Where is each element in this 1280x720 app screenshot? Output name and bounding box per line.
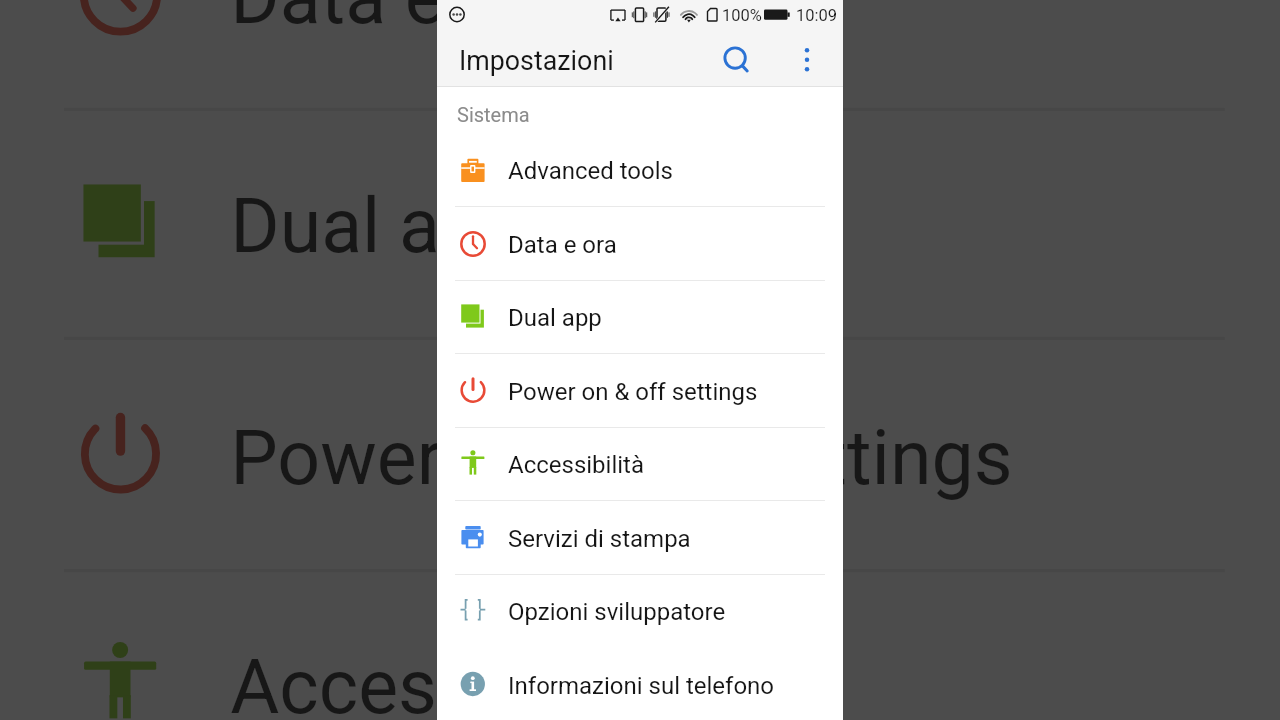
button[interactable]: Dual app bbox=[437, 280, 843, 354]
staticText: Servizi di stampa bbox=[508, 525, 691, 553]
button[interactable]: Power on & off settings bbox=[437, 354, 843, 428]
button[interactable]: More options bbox=[785, 36, 829, 80]
staticText: 100% bbox=[722, 6, 762, 25]
staticText: Power on & off settings bbox=[230, 415, 1015, 503]
button[interactable]: Informazioni sul telefono bbox=[437, 648, 843, 720]
button[interactable]: Accessibilità bbox=[437, 427, 843, 501]
staticText: Power on & off settings bbox=[508, 378, 758, 406]
staticText: Dual app bbox=[230, 183, 525, 271]
staticText: Data e ora bbox=[230, 0, 572, 42]
button[interactable]: Opzioni sviluppatore bbox=[437, 574, 843, 648]
staticText: Data e ora bbox=[508, 231, 617, 259]
staticText: Accessibilità bbox=[230, 644, 660, 720]
button[interactable]: Data e ora bbox=[437, 207, 843, 281]
staticText: Informazioni sul telefono bbox=[508, 672, 775, 700]
button[interactable]: Advanced tools bbox=[437, 133, 843, 207]
staticText: Accessibilità bbox=[508, 451, 645, 479]
staticText: Sistema bbox=[457, 103, 530, 126]
staticText: Impostazioni bbox=[459, 45, 614, 76]
button[interactable]: Servizi di stampa bbox=[437, 501, 843, 575]
staticText: Opzioni sviluppatore bbox=[508, 598, 726, 626]
button[interactable]: Search bbox=[714, 36, 758, 80]
staticText: Dual app bbox=[508, 304, 602, 332]
staticText: Advanced tools bbox=[508, 157, 673, 185]
staticText: 10:09 bbox=[796, 6, 838, 25]
